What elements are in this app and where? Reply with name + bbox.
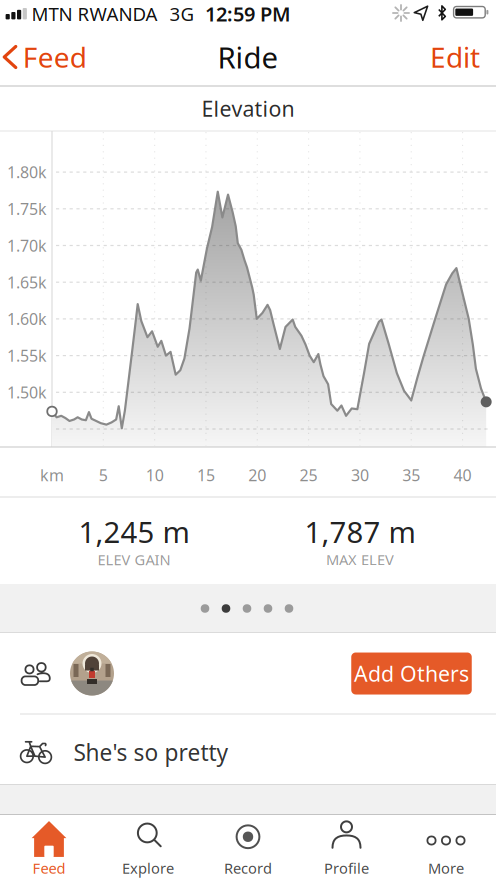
staticText: 40 [454, 464, 472, 486]
button[interactable]: Add Others [351, 652, 472, 694]
staticText: Edit [430, 38, 480, 76]
staticText: 1.80k [7, 161, 47, 183]
staticText: 5 [99, 464, 108, 486]
staticText: Feed [32, 858, 65, 878]
staticText: Explore [122, 858, 174, 878]
staticText: 1.55k [7, 345, 47, 366]
staticText: 1.70k [7, 235, 47, 256]
button[interactable]: Record [200, 815, 296, 881]
staticText: Add Others [354, 659, 469, 688]
staticText: MTN RWANDA [31, 1, 157, 26]
button[interactable]: More [398, 815, 494, 881]
staticText: 15 [197, 464, 215, 486]
button[interactable]: Edit [420, 35, 490, 79]
staticText: 10 [146, 464, 164, 486]
staticText: More [428, 858, 464, 878]
staticText: MAX ELEV [326, 550, 394, 569]
staticText: 25 [300, 464, 318, 486]
staticText: 20 [248, 464, 266, 486]
staticText: Ride [217, 37, 278, 76]
button[interactable]: Explore [100, 815, 196, 881]
staticText: Elevation [201, 94, 294, 123]
staticText: 35 [402, 464, 420, 486]
staticText: 30 [351, 464, 369, 486]
staticText: 1.75k [7, 198, 47, 219]
button[interactable]: She's so pretty [0, 714, 496, 784]
staticText: 1.60k [7, 308, 47, 329]
staticText: km [40, 464, 64, 486]
staticText: 1,787 m [304, 512, 415, 551]
staticText: Record [224, 858, 272, 878]
button[interactable]: Feed [1, 815, 97, 881]
button[interactable]: Profile [298, 815, 394, 881]
staticText: Feed [23, 38, 87, 76]
staticText: 12:59 PM [205, 0, 291, 27]
staticText: 1.50k [7, 382, 47, 403]
staticText: ELEV GAIN [97, 550, 170, 569]
button[interactable]: Feed [4, 35, 87, 79]
staticText: 1,245 m [78, 512, 189, 551]
staticText: She's so pretty [73, 737, 228, 767]
staticText: 1.65k [7, 272, 47, 293]
staticText: 3G [169, 1, 194, 26]
staticText: Profile [324, 858, 369, 878]
